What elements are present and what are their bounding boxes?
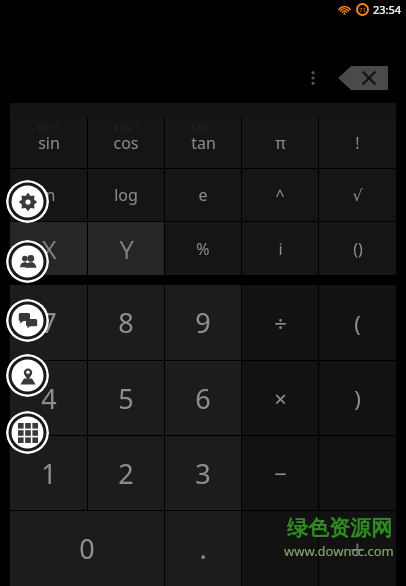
staticText: 绿色资源网: [287, 515, 392, 541]
button[interactable]: π: [242, 117, 318, 168]
staticText: cos⁻¹: [114, 119, 139, 134]
button[interactable]: .: [165, 511, 241, 586]
staticText: i: [278, 238, 283, 260]
button[interactable]: 4: [10, 361, 87, 435]
staticText: e: [198, 184, 208, 206]
button[interactable]: Y: [88, 222, 164, 275]
button[interactable]: Delete: [338, 66, 388, 90]
staticText: X: [41, 231, 57, 266]
staticText: −: [274, 458, 287, 488]
button[interactable]: i: [242, 222, 318, 275]
staticText: ln: [41, 184, 56, 206]
staticText: 2: [118, 455, 134, 492]
staticText: 0: [79, 530, 95, 567]
button[interactable]: ×: [242, 361, 318, 435]
button[interactable]: Apps: [6, 411, 49, 454]
button[interactable]: 9: [165, 285, 241, 360]
button[interactable]: !: [319, 117, 396, 168]
staticText: ): [354, 383, 361, 413]
staticText: +: [350, 531, 365, 566]
staticText: 6: [195, 380, 211, 417]
button[interactable]: (: [319, 285, 396, 360]
staticText: ^: [275, 184, 285, 206]
button[interactable]: 6: [165, 361, 241, 435]
button[interactable]: 1: [10, 436, 87, 510]
staticText: (): [353, 238, 363, 260]
button[interactable]: Location: [6, 354, 49, 397]
staticText: %: [196, 238, 210, 260]
staticText: 23:54: [373, 2, 402, 17]
staticText: .: [199, 530, 207, 567]
button[interactable]: Contacts: [6, 240, 49, 283]
staticText: √: [352, 186, 363, 205]
button[interactable]: √: [319, 169, 396, 221]
button[interactable]: (): [319, 222, 396, 275]
staticText: 4: [41, 380, 57, 417]
staticText: cos: [113, 132, 139, 154]
button[interactable]: ln: [10, 169, 87, 221]
button[interactable]: tan⁻¹: [165, 117, 241, 168]
button[interactable]: −: [242, 436, 318, 510]
button[interactable]: ): [319, 361, 396, 435]
button[interactable]: 8: [88, 285, 164, 360]
button[interactable]: +: [319, 511, 396, 586]
staticText: Y: [119, 231, 134, 266]
staticText: !: [355, 132, 360, 154]
button[interactable]: Settings: [6, 180, 49, 223]
staticText: tan⁻¹: [191, 119, 216, 134]
button[interactable]: 5: [88, 361, 164, 435]
button[interactable]: %: [165, 222, 241, 275]
button[interactable]: Messages: [6, 299, 49, 342]
staticText: log: [114, 184, 138, 206]
staticText: sin: [38, 132, 60, 154]
staticText: 7: [41, 304, 57, 341]
button[interactable]: cos⁻¹: [88, 117, 164, 168]
button[interactable]: ^: [242, 169, 318, 221]
button[interactable]: More options: [302, 64, 324, 92]
staticText: 9: [195, 304, 211, 341]
staticText: www.downcc.com: [284, 542, 394, 560]
button[interactable]: ÷: [242, 285, 318, 360]
staticText: 71: [359, 6, 366, 14]
button[interactable]: e: [165, 169, 241, 221]
button[interactable]: 0: [10, 511, 164, 586]
button[interactable]: log: [88, 169, 164, 221]
button[interactable]: 3: [165, 436, 241, 510]
staticText: sin⁻¹: [37, 119, 60, 134]
staticText: 1: [41, 455, 57, 492]
staticText: 8: [118, 304, 134, 341]
staticText: 3: [195, 455, 211, 492]
staticText: π: [275, 132, 286, 154]
button[interactable]: 7: [10, 285, 87, 360]
button[interactable]: [242, 511, 318, 586]
button[interactable]: X: [10, 222, 87, 275]
staticText: ÷: [274, 308, 287, 338]
staticText: ×: [274, 383, 287, 413]
staticText: tan: [191, 132, 216, 154]
staticText: 5: [118, 380, 134, 417]
button[interactable]: sin⁻¹: [10, 117, 87, 168]
button[interactable]: 2: [88, 436, 164, 510]
staticText: (: [354, 308, 361, 338]
